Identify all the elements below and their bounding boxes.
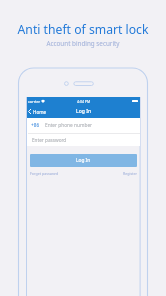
button[interactable]: Forget password bbox=[30, 171, 59, 176]
staticText: Anti theft of smart lock bbox=[0, 21, 166, 38]
button[interactable]: Log In bbox=[30, 154, 137, 167]
staticText: carrier bbox=[28, 99, 41, 104]
staticText: Log In bbox=[76, 157, 91, 164]
staticText: Enter phone number bbox=[45, 122, 93, 129]
button[interactable]: Register bbox=[123, 171, 137, 176]
staticText: Account binding security bbox=[0, 39, 166, 48]
staticText: Log In bbox=[76, 108, 92, 115]
staticText: Home bbox=[33, 109, 47, 115]
staticText: Enter password bbox=[32, 137, 67, 143]
staticText: 4:04 PM bbox=[77, 99, 91, 104]
button[interactable]: Home bbox=[27, 105, 49, 118]
staticText: +86 bbox=[31, 122, 40, 129]
